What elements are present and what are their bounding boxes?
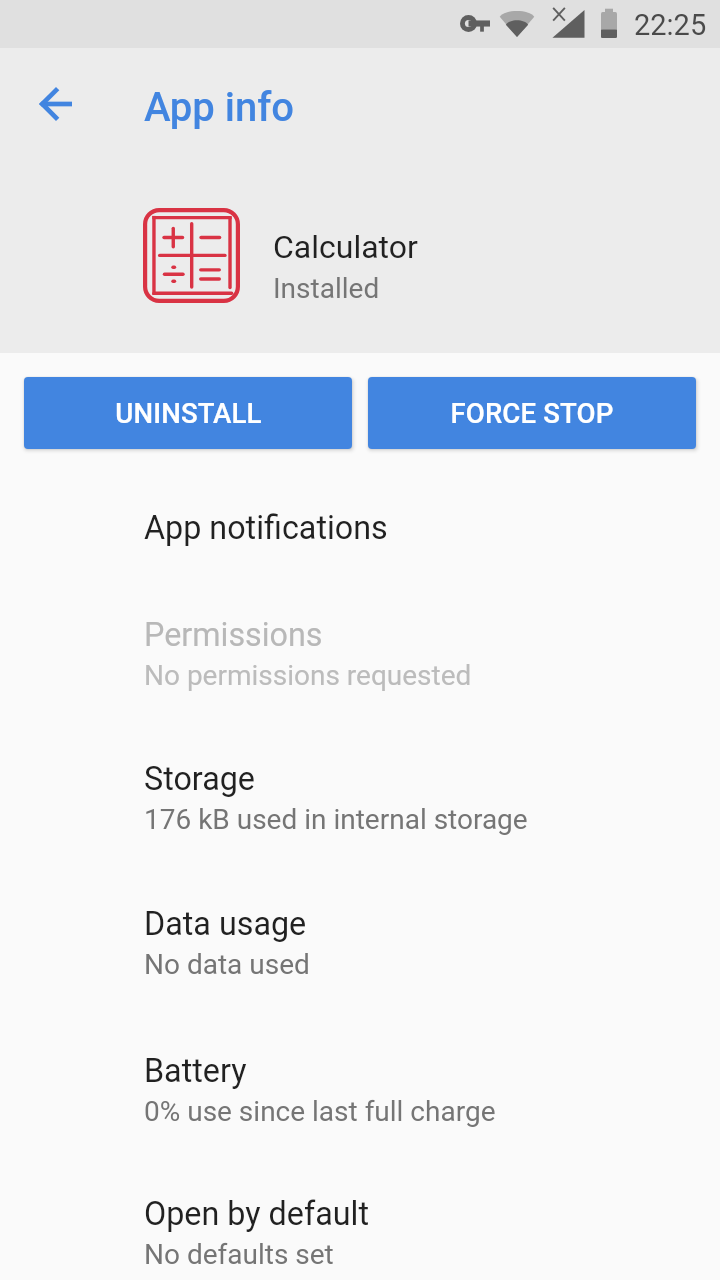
staticText: App notifications [144, 509, 388, 547]
staticText: Calculator [273, 228, 418, 266]
button[interactable]: Storage [0, 722, 720, 867]
button[interactable]: Permissions [0, 578, 720, 722]
staticText: App info [144, 84, 295, 131]
staticText: Storage [144, 760, 255, 798]
button[interactable]: App notifications [0, 473, 720, 578]
staticText: FORCE STOP [450, 397, 614, 429]
staticText: No permissions requested [144, 659, 472, 692]
staticText: Open by default [144, 1195, 369, 1233]
button[interactable]: UNINSTALL [24, 377, 352, 449]
button[interactable]: Data usage [0, 867, 720, 1013]
button[interactable]: Navigate up [24, 72, 88, 136]
staticText: UNINSTALL [115, 397, 262, 429]
staticText: Data usage [144, 905, 307, 943]
staticText: Battery [144, 1052, 247, 1090]
button[interactable]: FORCE STOP [368, 377, 696, 449]
staticText: 22:25 [634, 8, 707, 42]
staticText: No defaults set [144, 1238, 334, 1271]
staticText: Installed [273, 272, 380, 305]
staticText: 176 kB used in internal storage [144, 803, 528, 836]
staticText: Permissions [144, 616, 323, 654]
staticText: No data used [144, 948, 310, 981]
staticText: 0% use since last full charge [144, 1095, 496, 1128]
button[interactable]: Open by default [0, 1157, 720, 1280]
button[interactable]: Battery [0, 1013, 720, 1157]
